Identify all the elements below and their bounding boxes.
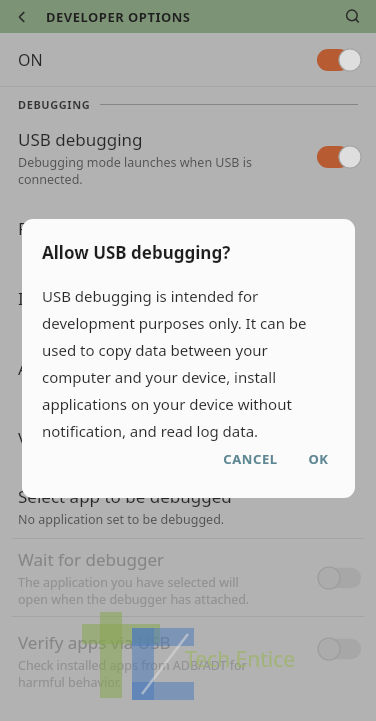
button[interactable]: Back xyxy=(6,1,38,33)
button[interactable]: Search xyxy=(338,2,368,32)
staticText: Check installed apps from ADB/ADT for ha… xyxy=(18,657,266,690)
staticText: USB debugging is intended for developmen… xyxy=(42,286,333,442)
button[interactable]: USB debugging xyxy=(0,121,376,193)
staticText: Tech Entice xyxy=(185,645,296,674)
button[interactable]: Verify apps via USB xyxy=(0,617,376,721)
staticText: Wait for debugger xyxy=(18,548,165,571)
button[interactable]: Revoke USB debugging authorizations xyxy=(0,193,376,263)
staticText: Allow USB debugging? xyxy=(42,241,231,264)
button[interactable]: OK xyxy=(292,442,345,472)
button[interactable]: ON xyxy=(0,33,376,86)
button[interactable]: CANCEL xyxy=(209,442,292,472)
staticText: USB debugging xyxy=(18,128,143,151)
button[interactable]: Select app to be debugged xyxy=(0,475,376,538)
staticText: Allow mock locations xyxy=(18,357,186,380)
button[interactable]: View attribute inspection xyxy=(0,403,376,473)
staticText: Revoke USB debugging authorizations xyxy=(18,217,325,240)
staticText: DEBUGGING xyxy=(18,97,91,112)
button[interactable]: Allow mock locations xyxy=(0,333,376,403)
staticText: ON xyxy=(18,49,43,71)
staticText: Verify apps via USB xyxy=(18,631,171,654)
staticText: Debugging mode launches when USB is conn… xyxy=(18,154,266,187)
staticText: OK xyxy=(308,450,329,464)
staticText: Include bug report in power menu xyxy=(18,287,293,310)
staticText: No application set to be debugged. xyxy=(18,511,225,528)
button[interactable]: Include bug report in power menu xyxy=(0,263,376,333)
staticText: CANCEL xyxy=(223,450,278,464)
staticText: Select app to be debugged xyxy=(18,485,232,508)
button[interactable]: Wait for debugger xyxy=(0,539,376,616)
staticText: The application you have selected will o… xyxy=(18,574,266,607)
staticText: View attribute inspection xyxy=(18,427,217,450)
staticText: DEVELOPER OPTIONS xyxy=(46,8,191,26)
